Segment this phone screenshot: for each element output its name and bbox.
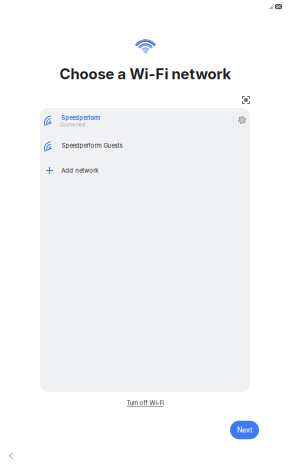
button[interactable]: Scan QR code xyxy=(239,93,253,107)
staticText: Turn off Wi-Fi xyxy=(126,399,163,407)
staticText: Add network xyxy=(61,167,98,174)
button[interactable]: Next xyxy=(230,421,259,439)
button[interactable]: Add network xyxy=(40,159,250,181)
button[interactable]: Turn off Wi-Fi xyxy=(115,397,175,409)
staticText: Speedperform Guests xyxy=(61,142,122,149)
staticText: Connected xyxy=(60,122,85,128)
staticText: Next xyxy=(237,426,252,434)
button[interactable]: Back xyxy=(3,447,19,463)
staticText: Choose a Wi-Fi network xyxy=(59,65,231,83)
button[interactable]: Speedperform xyxy=(40,108,250,132)
staticText: Speedperform xyxy=(61,114,100,121)
button[interactable]: Speedperform Guests xyxy=(40,134,250,156)
